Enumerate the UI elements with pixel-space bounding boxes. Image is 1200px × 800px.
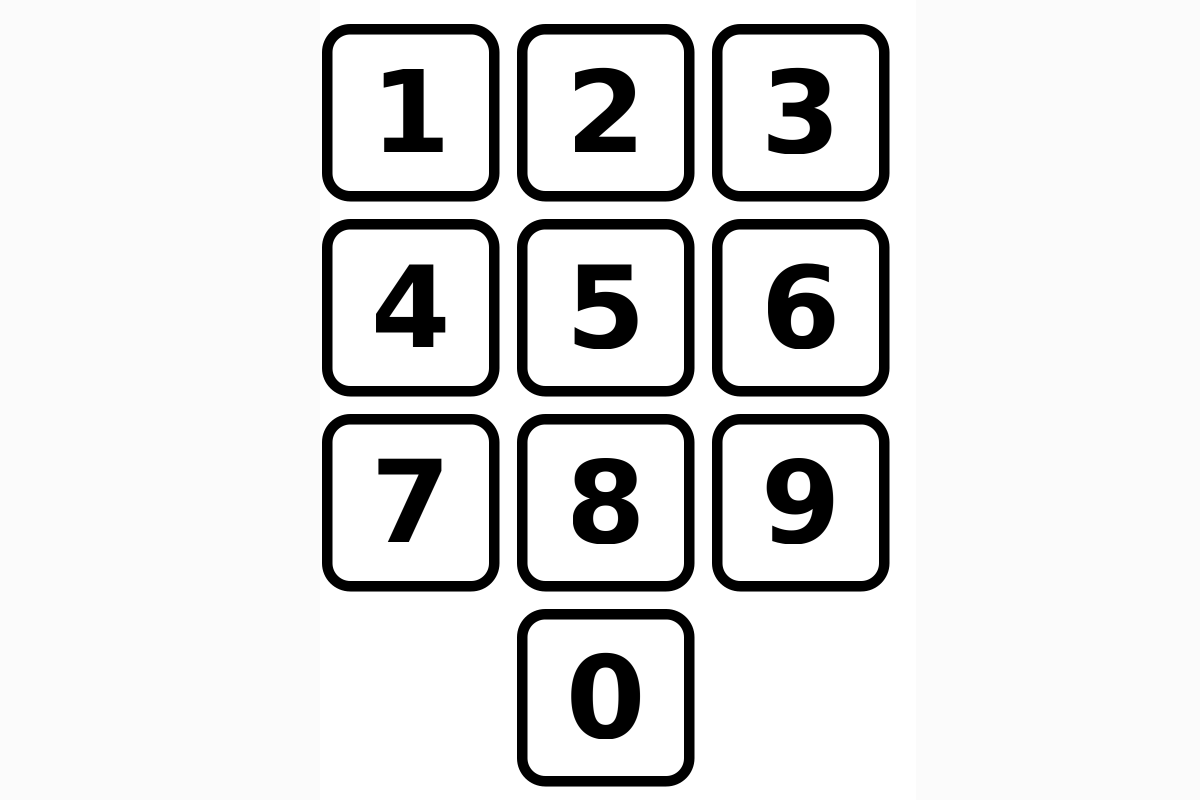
button[interactable]: 7 (322, 414, 499, 591)
staticText: 3 (761, 46, 841, 179)
button[interactable]: 0 (517, 609, 694, 786)
staticText: 9 (761, 436, 841, 569)
button[interactable]: 9 (712, 414, 889, 591)
button[interactable]: 1 (322, 24, 499, 201)
button[interactable]: 4 (322, 219, 499, 396)
staticText: 8 (566, 436, 646, 569)
staticText: 6 (761, 241, 841, 374)
button[interactable]: 5 (517, 219, 694, 396)
staticText: 4 (371, 241, 451, 374)
button[interactable]: 3 (712, 24, 889, 201)
button[interactable]: 2 (517, 24, 694, 201)
button[interactable]: 8 (517, 414, 694, 591)
button[interactable]: 6 (712, 219, 889, 396)
staticText: 1 (371, 46, 451, 179)
staticText: 2 (566, 46, 646, 179)
staticText: 5 (566, 241, 646, 374)
staticText: 7 (371, 436, 451, 569)
staticText: 0 (566, 631, 646, 764)
